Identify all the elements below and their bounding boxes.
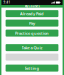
staticText: Pay [29, 20, 35, 26]
staticText: 9:41 [3, 1, 10, 4]
button[interactable]: Take a Quiz [6, 44, 58, 51]
button[interactable] [6, 54, 58, 61]
staticText: Setting [24, 65, 39, 71]
staticText: Already Paid [20, 11, 44, 16]
button[interactable]: Setting [6, 65, 58, 72]
button[interactable]: Already Paid [6, 10, 58, 17]
staticText: My Courses [24, 4, 39, 8]
staticText: Take a Quiz [21, 45, 42, 50]
staticText: Practice question [15, 30, 49, 36]
button[interactable]: Practice question [6, 30, 58, 37]
button[interactable]: Pay [6, 20, 58, 27]
